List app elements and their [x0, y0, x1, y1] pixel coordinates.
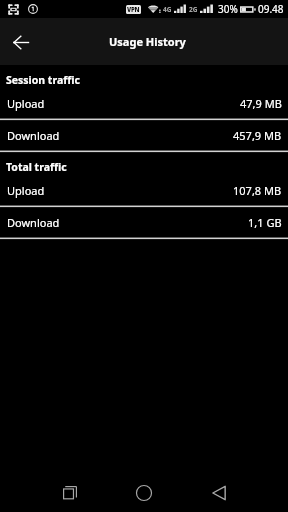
button[interactable]: Home — [127, 476, 160, 509]
staticText: Upload — [7, 96, 45, 111]
staticText: Usage History — [109, 34, 186, 49]
button[interactable]: Upload — [0, 88, 288, 119]
button[interactable]: Upload — [0, 175, 288, 206]
button[interactable]: Download — [0, 207, 288, 238]
staticText: Upload — [7, 183, 45, 198]
staticText: Download — [7, 128, 60, 143]
staticText: 47,9 MB — [240, 96, 282, 111]
staticText: 2G — [189, 5, 198, 14]
staticText: 457,9 MB — [233, 128, 282, 143]
staticText: 09.48 — [258, 2, 284, 16]
button[interactable]: Back — [5, 26, 37, 58]
staticText: 4G — [163, 5, 172, 14]
staticText: VPN — [127, 6, 140, 14]
button[interactable]: Recents — [53, 476, 86, 509]
staticText: Download — [7, 215, 60, 230]
staticText: 107,8 MB — [233, 183, 282, 198]
staticText: 1,1 GB — [248, 215, 282, 230]
button[interactable]: Download — [0, 120, 288, 151]
staticText: Total traffic — [6, 160, 67, 174]
staticText: Session traffic — [6, 73, 80, 87]
button[interactable]: Back — [202, 476, 235, 509]
staticText: 30% — [218, 2, 238, 16]
